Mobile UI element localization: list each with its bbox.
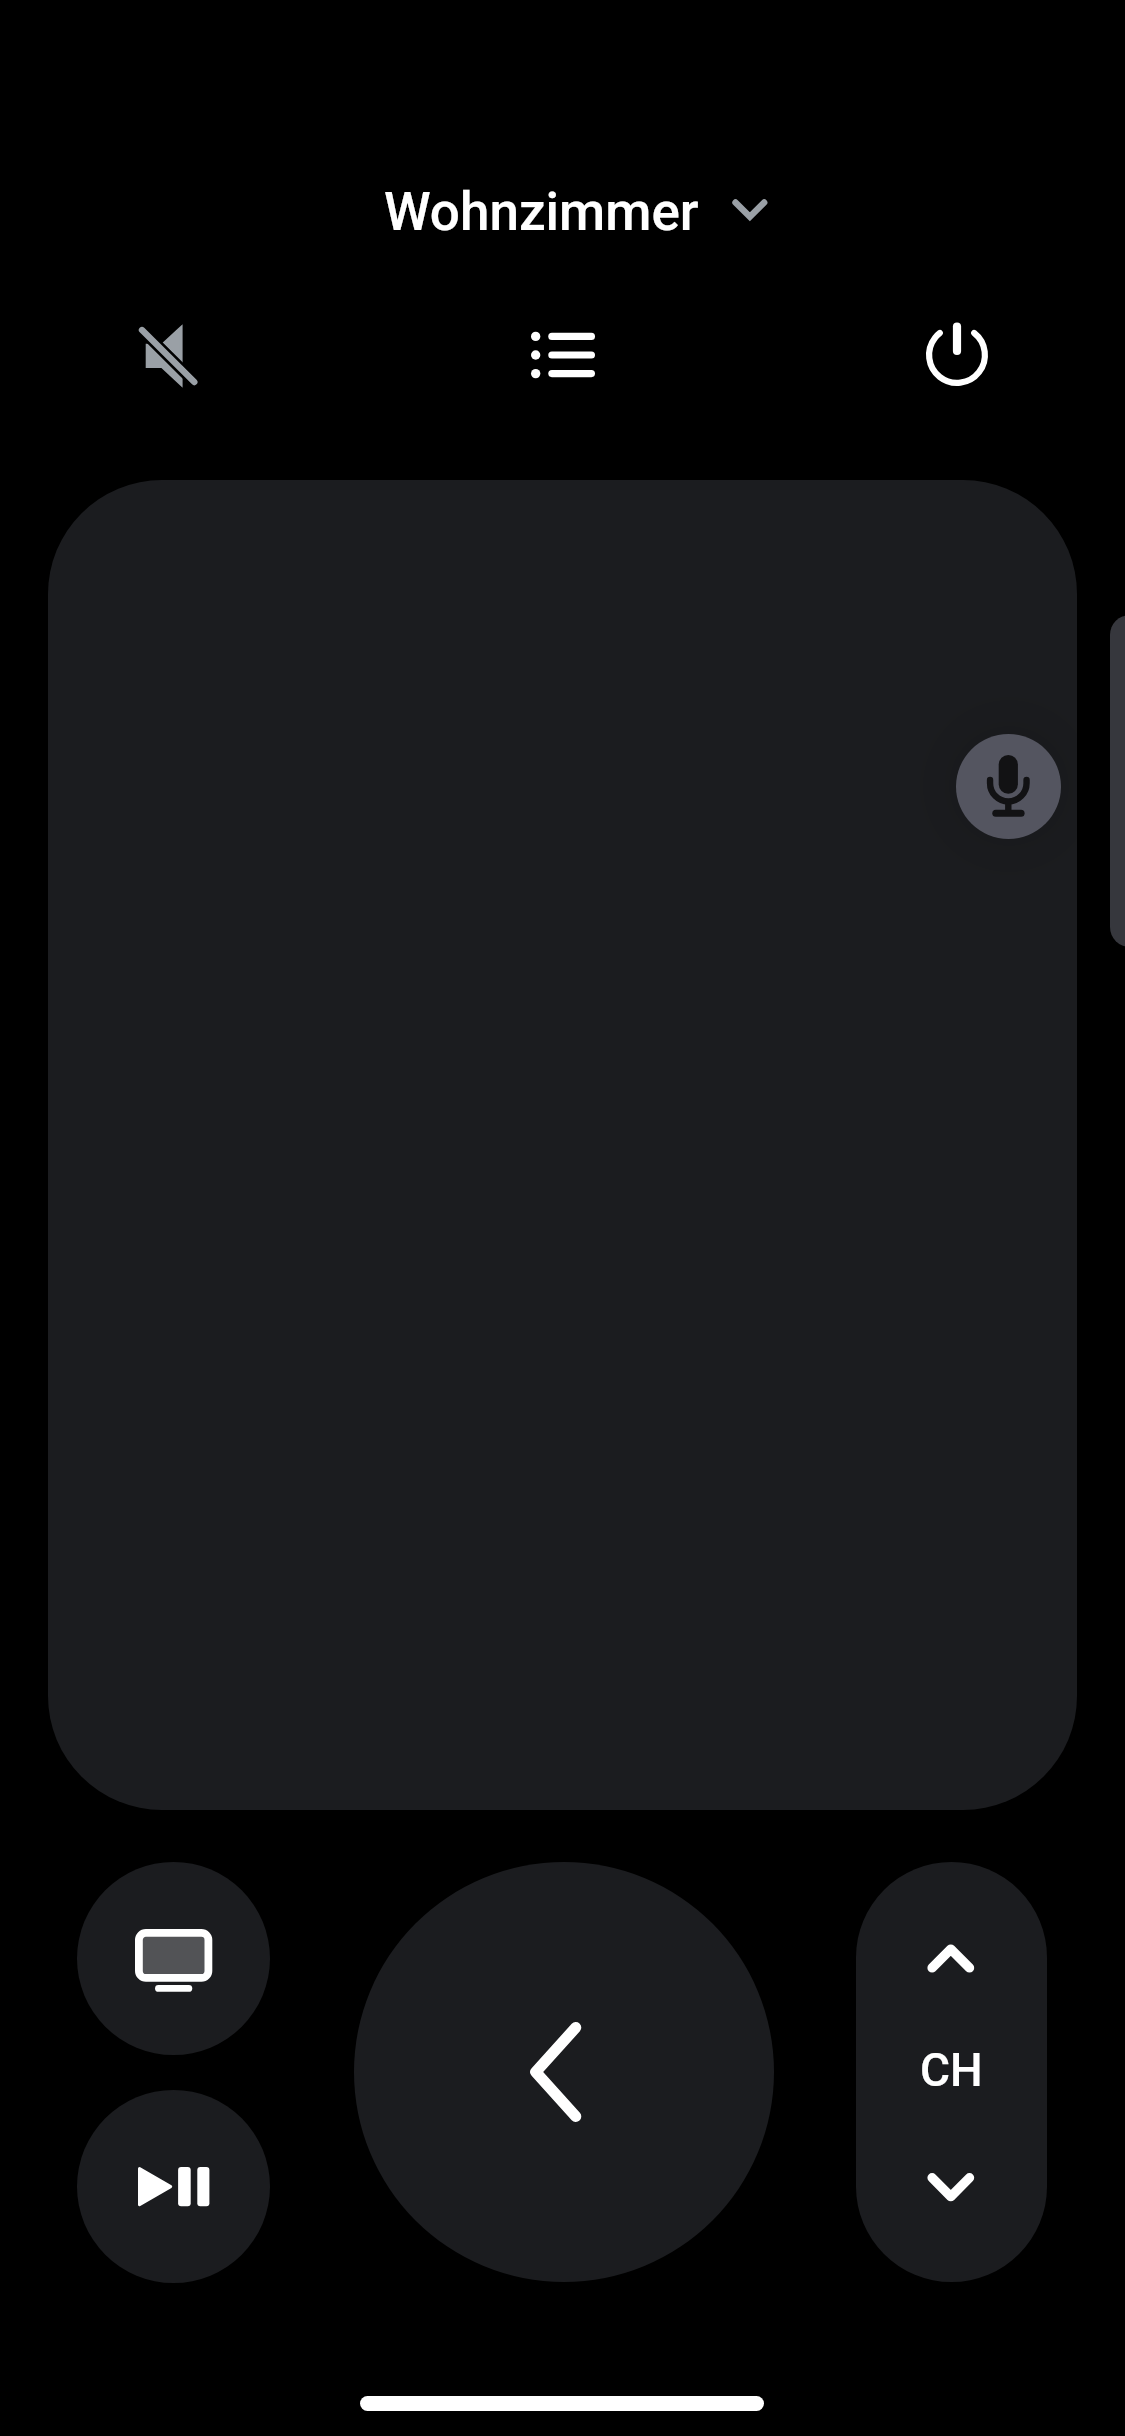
button[interactable]: Back	[354, 1862, 774, 2282]
button[interactable]: Open channel list	[1110, 615, 1125, 947]
button[interactable]: Touchpad	[48, 480, 1077, 1810]
button[interactable]: Power	[892, 293, 1022, 423]
staticText: CH	[920, 2043, 983, 2097]
staticText: Wohnzimmer	[384, 181, 699, 243]
button[interactable]: Channel up	[856, 1862, 1047, 2072]
button[interactable]: Wohnzimmer	[345, 160, 815, 270]
button[interactable]: Voice search	[956, 734, 1061, 839]
button[interactable]: Play or pause	[77, 2090, 270, 2283]
button[interactable]: Mute	[103, 291, 233, 421]
button[interactable]: Channel guide	[498, 290, 628, 420]
button[interactable]: Input source	[77, 1862, 270, 2055]
button[interactable]: Channel down	[856, 2072, 1047, 2282]
